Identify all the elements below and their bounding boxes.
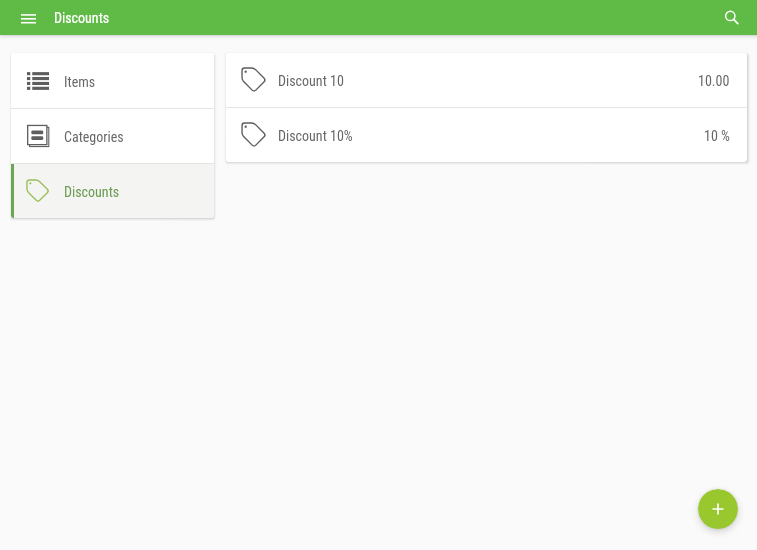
button[interactable]: Add discount xyxy=(698,489,738,529)
staticText: Discount 10% xyxy=(278,128,353,144)
staticText: 10 % xyxy=(704,128,730,144)
staticText: Items xyxy=(64,74,96,90)
button[interactable]: Categories xyxy=(11,109,214,163)
staticText: Categories xyxy=(64,129,124,145)
button[interactable]: Discount 10 xyxy=(226,53,747,107)
button[interactable]: Open navigation menu xyxy=(14,4,42,32)
staticText: Discounts xyxy=(54,10,110,26)
button[interactable]: Discounts xyxy=(11,164,214,218)
button[interactable]: Discount 10% xyxy=(226,108,747,162)
button[interactable]: Search xyxy=(717,4,745,32)
staticText: 10.00 xyxy=(698,73,730,89)
staticText: Discount 10 xyxy=(278,73,344,89)
staticText: Discounts xyxy=(64,184,120,200)
button[interactable]: Items xyxy=(11,53,214,108)
